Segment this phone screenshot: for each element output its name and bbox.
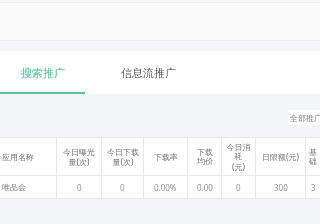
staticText: 3 (311, 182, 316, 193)
staticText: 基础 (308, 147, 318, 167)
staticText: 0.00% (154, 182, 177, 193)
staticText: 应用名称 (2, 152, 34, 162)
staticText: 今日下载 量(次) (107, 147, 139, 167)
button[interactable]: 搜索推广 (0, 51, 86, 94)
staticText: 今日曝光 量(次) (63, 147, 95, 167)
staticText: 0 (77, 182, 82, 193)
staticText: 信息流推广 (121, 66, 176, 80)
button[interactable]: 信息流推广 (86, 51, 211, 94)
button[interactable]: 全部推广筛选 (288, 110, 320, 125)
staticText: 0 (236, 182, 241, 193)
staticText: 日限额(元) (262, 151, 299, 162)
staticText: 下载率 (154, 152, 178, 162)
staticText: 搜索推广 (21, 66, 65, 80)
staticText: 今日消耗 (元) (224, 142, 253, 172)
staticText: 0.00 (197, 182, 213, 193)
staticText: 0 (120, 182, 125, 193)
staticText: 全部推广 (290, 113, 320, 123)
staticText: 下载 均价 (197, 147, 213, 167)
button[interactable]: 唯品会 (0, 176, 320, 198)
staticText: 唯品会 (2, 182, 26, 192)
staticText: 300 (274, 182, 288, 193)
